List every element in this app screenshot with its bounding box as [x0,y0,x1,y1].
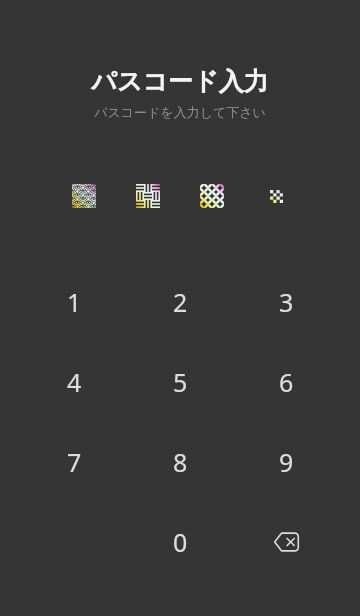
other: Delete [273,529,299,555]
staticText: 0 [173,525,188,559]
staticText: 5 [173,365,188,399]
button[interactable]: 3 [233,262,339,342]
staticText: 3 [279,285,294,319]
staticText: 7 [67,445,82,479]
button[interactable]: 6 [233,342,339,422]
staticText: 9 [279,445,294,479]
button[interactable]: 0 [127,502,233,582]
staticText: パスコードを入力して下さい [0,104,360,120]
staticText: 1 [67,285,82,319]
staticText: 4 [67,365,82,399]
button[interactable]: Delete [233,502,339,582]
staticText: 6 [279,365,294,399]
button[interactable]: 8 [127,422,233,502]
button[interactable]: 2 [127,262,233,342]
staticText: パスコード入力 [0,66,360,97]
button[interactable]: 4 [21,342,127,422]
button[interactable]: 7 [21,422,127,502]
button[interactable]: 5 [127,342,233,422]
staticText: 8 [173,445,188,479]
staticText: 2 [173,285,188,319]
button[interactable]: 1 [21,262,127,342]
button[interactable]: 9 [233,422,339,502]
